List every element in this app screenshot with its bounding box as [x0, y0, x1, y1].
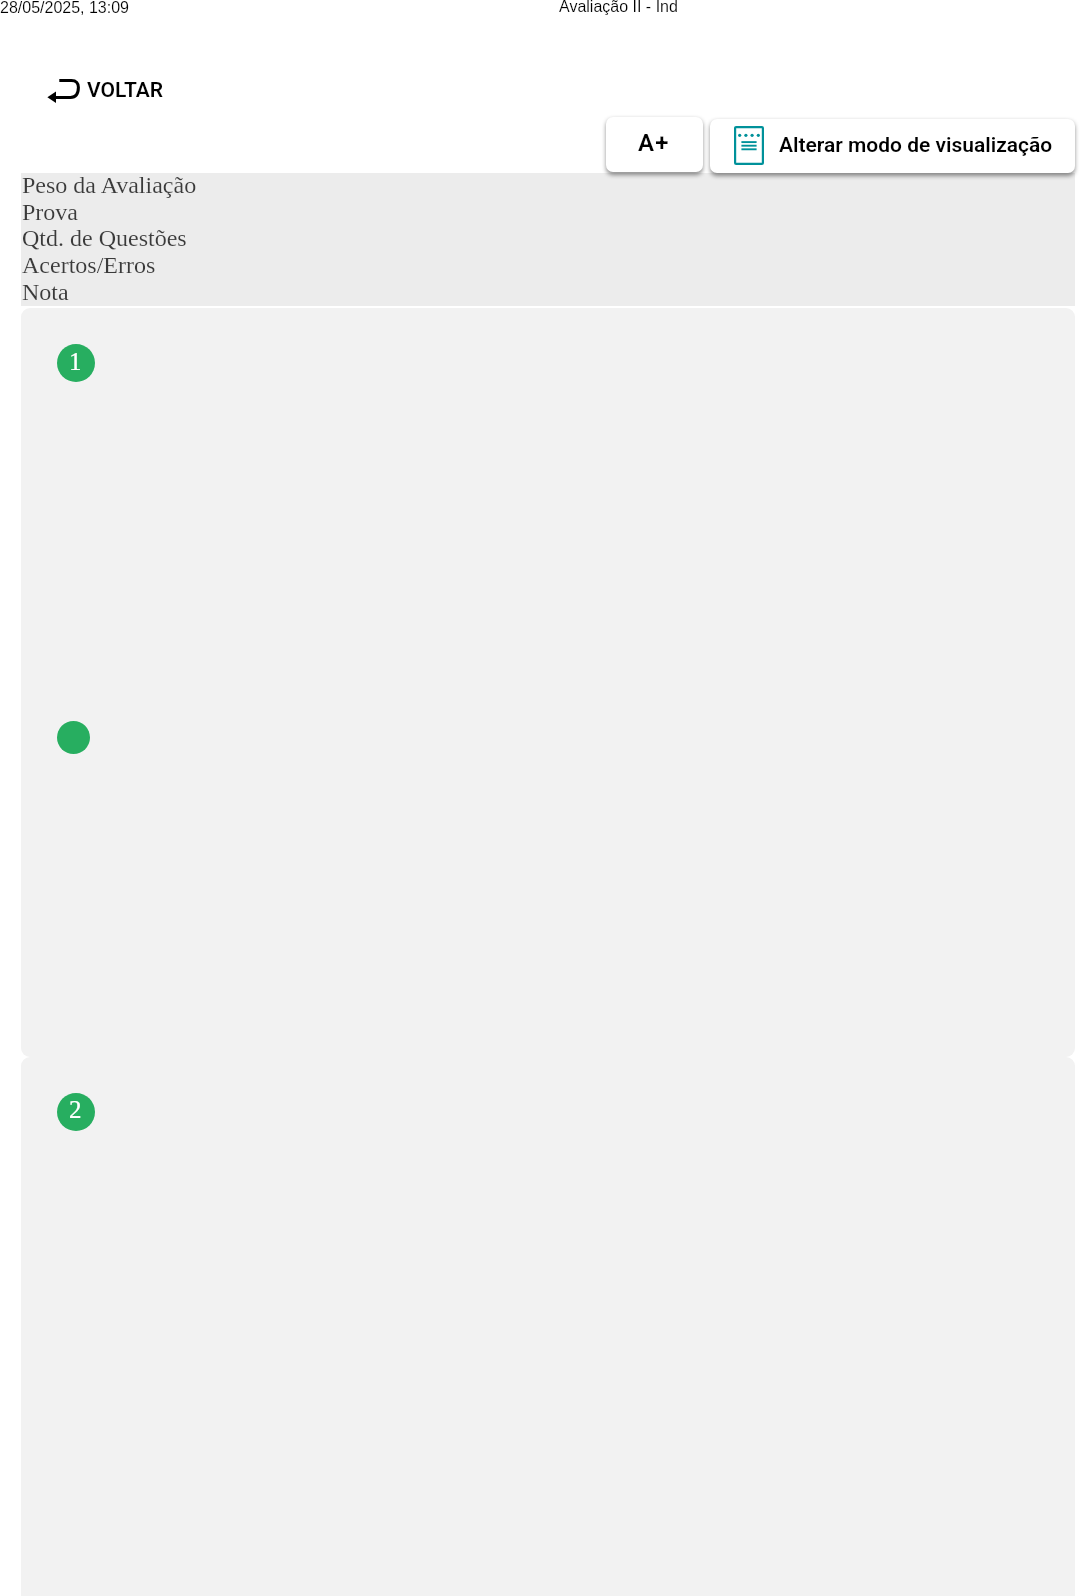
staticText: Avaliação II - Ind	[559, 0, 678, 16]
staticText: 28/05/2025, 13:09	[0, 0, 130, 17]
button[interactable]: Alterar modo de visualização	[710, 119, 1075, 173]
staticText: Qtd. de Questões	[22, 225, 187, 252]
staticText: A+	[638, 129, 670, 157]
button[interactable]: Aumentar fonte	[606, 117, 703, 172]
staticText: Prova	[22, 199, 78, 226]
staticText: 1	[69, 348, 82, 376]
button[interactable]: Questão 1	[21, 308, 1075, 1057]
staticText: VOLTAR	[87, 78, 164, 103]
button[interactable]: Questão 2	[21, 1057, 1075, 1596]
staticText: Nota	[22, 279, 69, 306]
staticText: 2	[69, 1096, 82, 1124]
staticText: Peso da Avaliação	[22, 172, 197, 199]
button[interactable]: VOLTAR	[40, 70, 165, 110]
staticText: Alterar modo de visualização	[779, 133, 1053, 158]
staticText: Acertos/Erros	[22, 252, 156, 279]
